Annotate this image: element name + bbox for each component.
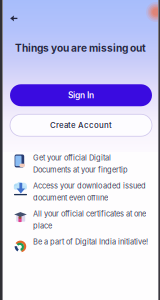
staticText: Get your official Digital Documents at y…: [33, 153, 128, 174]
staticText: Sign In: [68, 90, 94, 100]
staticText: All your official certificates at one pl…: [33, 209, 146, 230]
staticText: Create Account: [50, 120, 112, 130]
button[interactable]: Sign In: [10, 84, 152, 106]
staticText: Be a part of Digital India initiative!: [33, 237, 148, 246]
button[interactable]: Back: [8, 13, 20, 24]
staticText: Access your downloaded issued document e…: [33, 181, 146, 202]
button[interactable]: Create Account: [10, 114, 152, 136]
staticText: Things you are missing out: [15, 42, 146, 54]
